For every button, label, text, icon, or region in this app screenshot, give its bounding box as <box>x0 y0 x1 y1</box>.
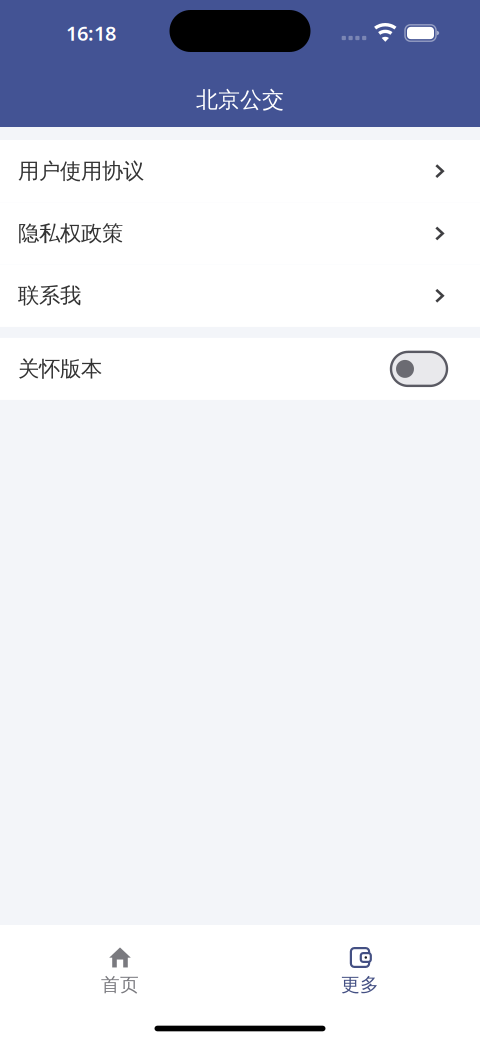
staticText: 北京公交 <box>196 86 284 114</box>
button[interactable]: 用户使用协议 <box>0 140 480 202</box>
staticText: 关怀版本 <box>18 355 102 382</box>
button[interactable]: 关怀版本开关 <box>391 352 447 386</box>
button[interactable]: 联系我 <box>0 265 480 327</box>
staticText: 用户使用协议 <box>18 158 144 185</box>
button[interactable]: 隐私权政策 <box>0 202 480 265</box>
staticText: 首页 <box>101 973 139 996</box>
staticText: 联系我 <box>18 282 81 309</box>
staticText: 更多 <box>341 973 379 996</box>
button[interactable]: 首页 <box>0 925 240 1004</box>
button[interactable]: 更多 <box>240 925 480 1004</box>
staticText: 16:18 <box>66 19 116 47</box>
staticText: 隐私权政策 <box>18 220 123 247</box>
